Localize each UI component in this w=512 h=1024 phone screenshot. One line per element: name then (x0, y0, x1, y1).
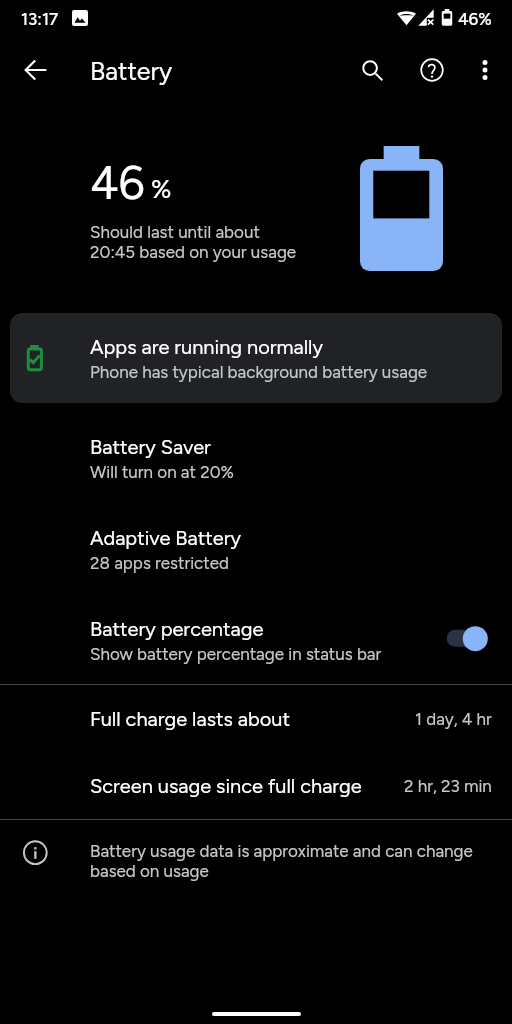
button[interactable]: Battery percentage toggle (440, 620, 496, 658)
button[interactable]: Full charge lasts about (0, 691, 512, 758)
staticText: Phone has typical background battery usa… (90, 362, 428, 382)
staticText: Apps are running normally (90, 335, 324, 359)
button[interactable]: Battery percentage (0, 604, 512, 676)
staticText: Battery (90, 56, 173, 86)
staticText: Battery percentage (90, 617, 264, 641)
staticText: Full charge lasts about (90, 707, 291, 731)
staticText: Battery usage data is approximate and ca… (90, 841, 494, 881)
button[interactable]: More options (461, 46, 509, 94)
staticText: Show battery percentage in status bar (90, 644, 382, 664)
button[interactable]: Apps are running normally (10, 313, 502, 403)
staticText: Screen usage since full charge (90, 774, 362, 798)
staticText: Battery Saver (90, 435, 211, 459)
button[interactable]: Screen usage since full charge (0, 758, 512, 825)
staticText: 13:17 (21, 9, 59, 29)
staticText: 2 hr, 23 min (404, 776, 492, 796)
staticText: 46% (458, 9, 492, 29)
button[interactable]: Help (408, 46, 456, 94)
staticText: Will turn on at 20% (90, 462, 234, 482)
staticText: 46 (90, 155, 145, 210)
staticText: Should last until about 20:45 based on y… (90, 222, 297, 263)
staticText: Adaptive Battery (90, 526, 242, 550)
staticText: % (151, 173, 172, 204)
button[interactable]: Back (12, 46, 60, 94)
staticText: 28 apps restricted (90, 553, 229, 573)
button[interactable]: Adaptive Battery (0, 513, 512, 585)
staticText: 1 day, 4 hr (415, 709, 492, 729)
button[interactable]: Battery Saver (0, 422, 512, 494)
button[interactable]: Search (348, 46, 396, 94)
